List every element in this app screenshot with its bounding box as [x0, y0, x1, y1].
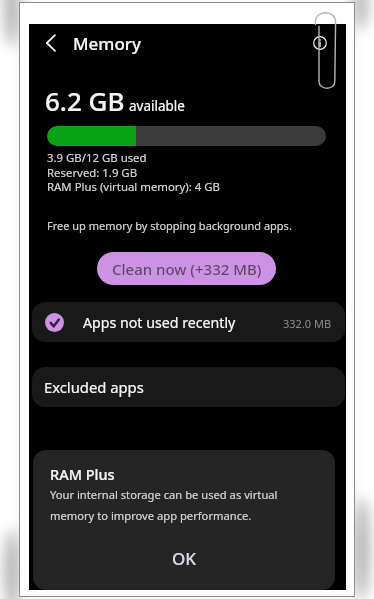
staticText: Excluded apps	[44, 377, 144, 397]
button[interactable]: Apps not used recently	[32, 302, 345, 342]
staticText: 332.0 MB	[283, 316, 332, 331]
staticText: Apps not used recently	[83, 313, 236, 332]
staticText: available	[129, 97, 185, 115]
staticText: Reserved: 1.9 GB	[47, 165, 138, 181]
staticText: Memory	[73, 32, 142, 55]
staticText: Free up memory by stopping background ap…	[47, 218, 292, 233]
staticText: 3.9 GB/12 GB used	[47, 150, 147, 166]
button[interactable]: OK	[33, 536, 335, 581]
button[interactable]: Information	[302, 25, 338, 61]
button[interactable]: Excluded apps	[32, 367, 345, 407]
staticText: memory to improve app performance.	[50, 508, 252, 523]
button[interactable]: Navigate up	[33, 25, 69, 61]
staticText: Clean now (+332 MB)	[112, 259, 262, 279]
staticText: 6.2 GB	[45, 83, 125, 118]
button[interactable]: Clean now (+332 MB)	[97, 252, 276, 285]
staticText: Your internal storage can be used as vir…	[50, 487, 278, 502]
staticText: OK	[172, 547, 197, 570]
staticText: RAM Plus	[50, 464, 115, 484]
staticText: RAM Plus (virtual memory): 4 GB	[47, 179, 220, 195]
